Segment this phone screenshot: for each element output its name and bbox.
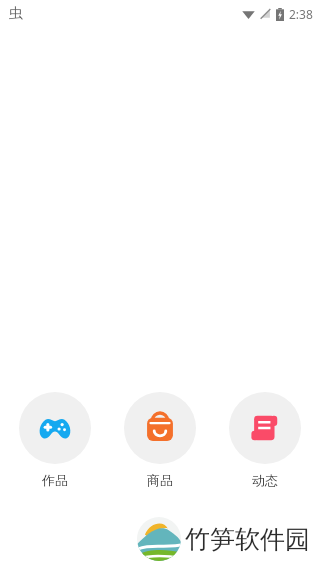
staticText: 作品 (42, 472, 68, 488)
button[interactable]: Works (19, 392, 91, 488)
staticText: 竹笋软件园 (185, 524, 310, 555)
button[interactable]: Feed (229, 392, 301, 488)
staticText: 商品 (147, 472, 173, 488)
staticText: 2:38 (289, 6, 313, 22)
staticText: 动态 (252, 472, 278, 488)
button[interactable]: Products (124, 392, 196, 488)
staticText: 虫 (9, 5, 23, 23)
